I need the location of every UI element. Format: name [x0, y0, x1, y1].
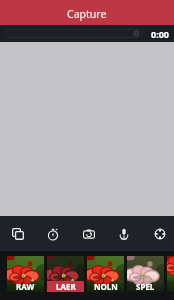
staticText: 0:00: [151, 28, 169, 40]
button[interactable]: LAER: [47, 256, 84, 292]
staticText: Capture: [67, 7, 107, 21]
button[interactable]: HDRX: [167, 256, 174, 292]
button[interactable]: Gallery: [7, 223, 29, 245]
staticText: SPEL: [136, 281, 155, 292]
staticText: RAW: [16, 281, 35, 292]
button[interactable]: Focus: [149, 223, 171, 245]
button[interactable]: Switch camera: [78, 223, 100, 245]
button[interactable]: Microphone: [113, 223, 135, 245]
button[interactable]: RAW: [7, 256, 44, 292]
button[interactable]: Timer: [42, 223, 64, 245]
button[interactable]: Capture: [0, 0, 174, 25]
staticText: LAER: [56, 281, 76, 292]
button[interactable]: SPEL: [127, 256, 164, 292]
button[interactable]: NOLN: [87, 256, 124, 292]
button[interactable]: [4, 29, 143, 38]
staticText: NOLN: [94, 281, 118, 292]
